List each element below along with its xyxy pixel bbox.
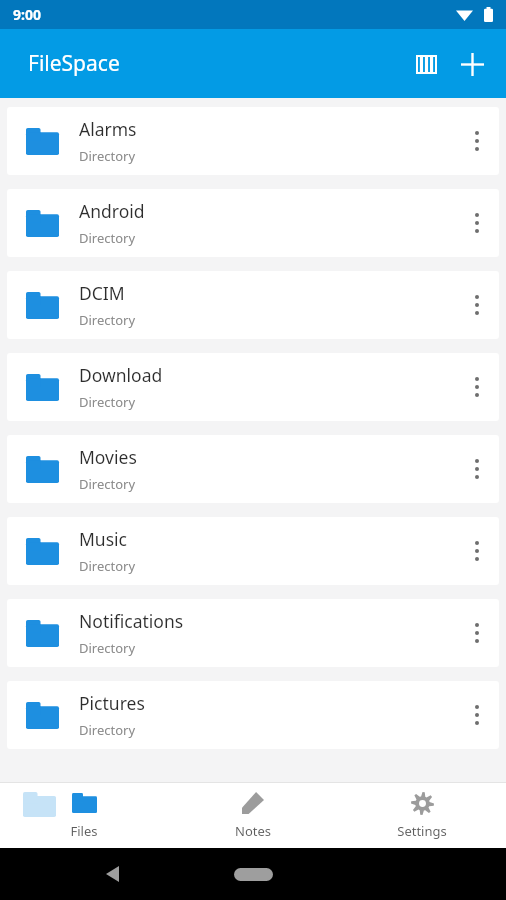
- button[interactable]: More options for Download: [455, 353, 499, 421]
- staticText: Directory: [79, 639, 136, 657]
- staticText: 9:00: [13, 5, 41, 24]
- button[interactable]: More options for Movies: [455, 435, 499, 503]
- staticText: Movies: [79, 445, 137, 469]
- button[interactable]: Home: [230, 863, 276, 885]
- button[interactable]: More options for Pictures: [455, 681, 499, 749]
- staticText: Alarms: [79, 117, 137, 141]
- button[interactable]: More options for Notifications: [455, 599, 499, 667]
- button[interactable]: Notifications: [7, 599, 499, 667]
- button[interactable]: Back: [95, 857, 129, 891]
- button[interactable]: More options for DCIM: [455, 271, 499, 339]
- staticText: Directory: [79, 475, 136, 493]
- button[interactable]: More options for Music: [455, 517, 499, 585]
- button[interactable]: Download: [7, 353, 499, 421]
- button[interactable]: DCIM: [7, 271, 499, 339]
- staticText: Music: [79, 527, 127, 551]
- button[interactable]: Alarms: [7, 107, 499, 175]
- staticText: Files: [70, 822, 98, 840]
- staticText: Directory: [79, 311, 136, 329]
- staticText: Notifications: [79, 609, 184, 633]
- staticText: Directory: [79, 229, 136, 247]
- button[interactable]: Notes: [168, 790, 337, 840]
- staticText: Directory: [79, 721, 136, 739]
- button[interactable]: Add: [449, 41, 495, 87]
- button[interactable]: Android: [7, 189, 499, 257]
- button[interactable]: Settings: [337, 790, 506, 840]
- staticText: Pictures: [79, 691, 145, 715]
- staticText: FileSpace: [28, 49, 120, 78]
- button[interactable]: Music: [7, 517, 499, 585]
- staticText: Android: [79, 199, 145, 223]
- button[interactable]: More options for Android: [455, 189, 499, 257]
- staticText: Directory: [79, 147, 136, 165]
- button[interactable]: Pictures: [7, 681, 499, 749]
- staticText: Notes: [235, 822, 271, 840]
- staticText: DCIM: [79, 281, 125, 305]
- staticText: Download: [79, 363, 163, 387]
- staticText: Directory: [79, 557, 136, 575]
- button[interactable]: Files: [0, 790, 168, 840]
- button[interactable]: More options for Alarms: [455, 107, 499, 175]
- staticText: Directory: [79, 393, 136, 411]
- button[interactable]: Movies: [7, 435, 499, 503]
- staticText: Settings: [397, 822, 447, 840]
- button[interactable]: Switch view: [403, 41, 449, 87]
